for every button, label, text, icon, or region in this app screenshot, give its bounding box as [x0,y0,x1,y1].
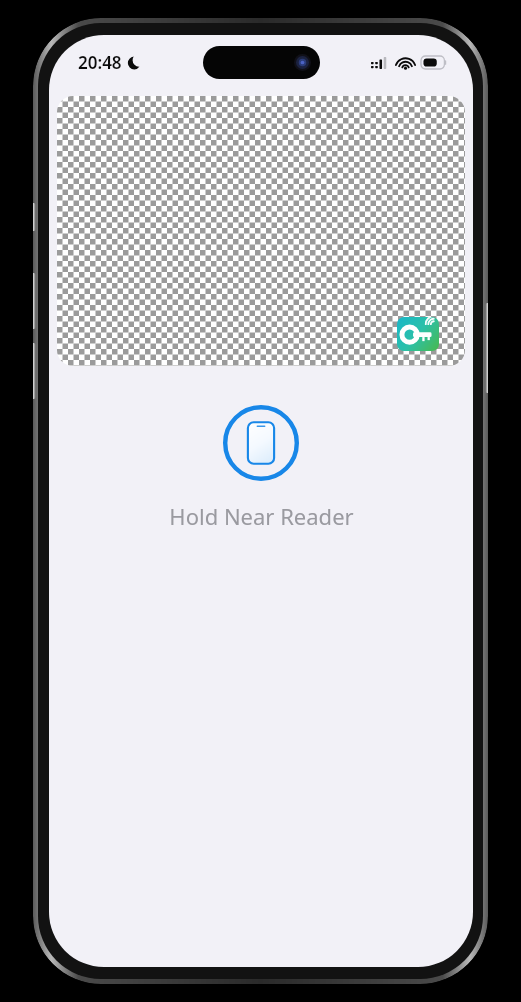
other: Hold phone near reader [223,405,299,481]
button[interactable]: Car key pass [397,317,439,351]
button[interactable]: Car key pass [57,96,465,366]
staticText: Hold Near Reader [169,501,354,531]
staticText: 20:48 [78,51,122,74]
